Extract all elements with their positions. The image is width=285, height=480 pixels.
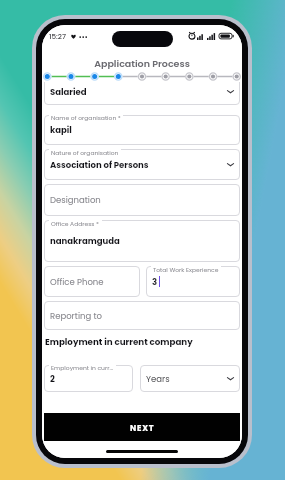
button[interactable]: 2 <box>44 360 133 392</box>
staticText: 15:27 <box>49 31 67 41</box>
staticText: Nature of organisation <box>51 149 119 157</box>
button[interactable]: Association of Persons <box>44 145 240 180</box>
staticText: Office Address * <box>51 220 100 228</box>
staticText: kapil <box>50 124 72 136</box>
button[interactable]: Office Phone <box>44 262 140 297</box>
staticText: nanakramguda <box>50 235 120 247</box>
button[interactable]: 3 <box>146 262 240 297</box>
staticText: Office Phone <box>50 276 104 288</box>
button[interactable]: Years <box>140 360 240 392</box>
staticText: NEXT <box>130 422 155 433</box>
button[interactable]: nanakramguda <box>44 216 240 262</box>
staticText: Association of Persons <box>50 159 149 171</box>
staticText: Employment in curr... <box>51 364 114 372</box>
staticText: Reporting to <box>50 310 102 322</box>
staticText: Designation <box>50 194 101 206</box>
staticText: 3 <box>152 276 158 288</box>
staticText: Application Process <box>42 57 242 70</box>
staticText: Salaried <box>50 86 87 98</box>
button[interactable]: NEXT <box>44 413 240 441</box>
staticText: Years <box>146 373 170 385</box>
staticText: Total Work Experience <box>153 266 219 274</box>
staticText: 2 <box>50 373 55 385</box>
button[interactable]: Salaried <box>44 78 240 105</box>
staticText: Name of organisation * <box>51 114 121 122</box>
button[interactable]: kapil <box>44 110 240 145</box>
button[interactable]: Designation <box>44 180 240 216</box>
button[interactable]: Reporting to <box>44 297 240 330</box>
staticText: Employment in current company <box>45 336 193 348</box>
